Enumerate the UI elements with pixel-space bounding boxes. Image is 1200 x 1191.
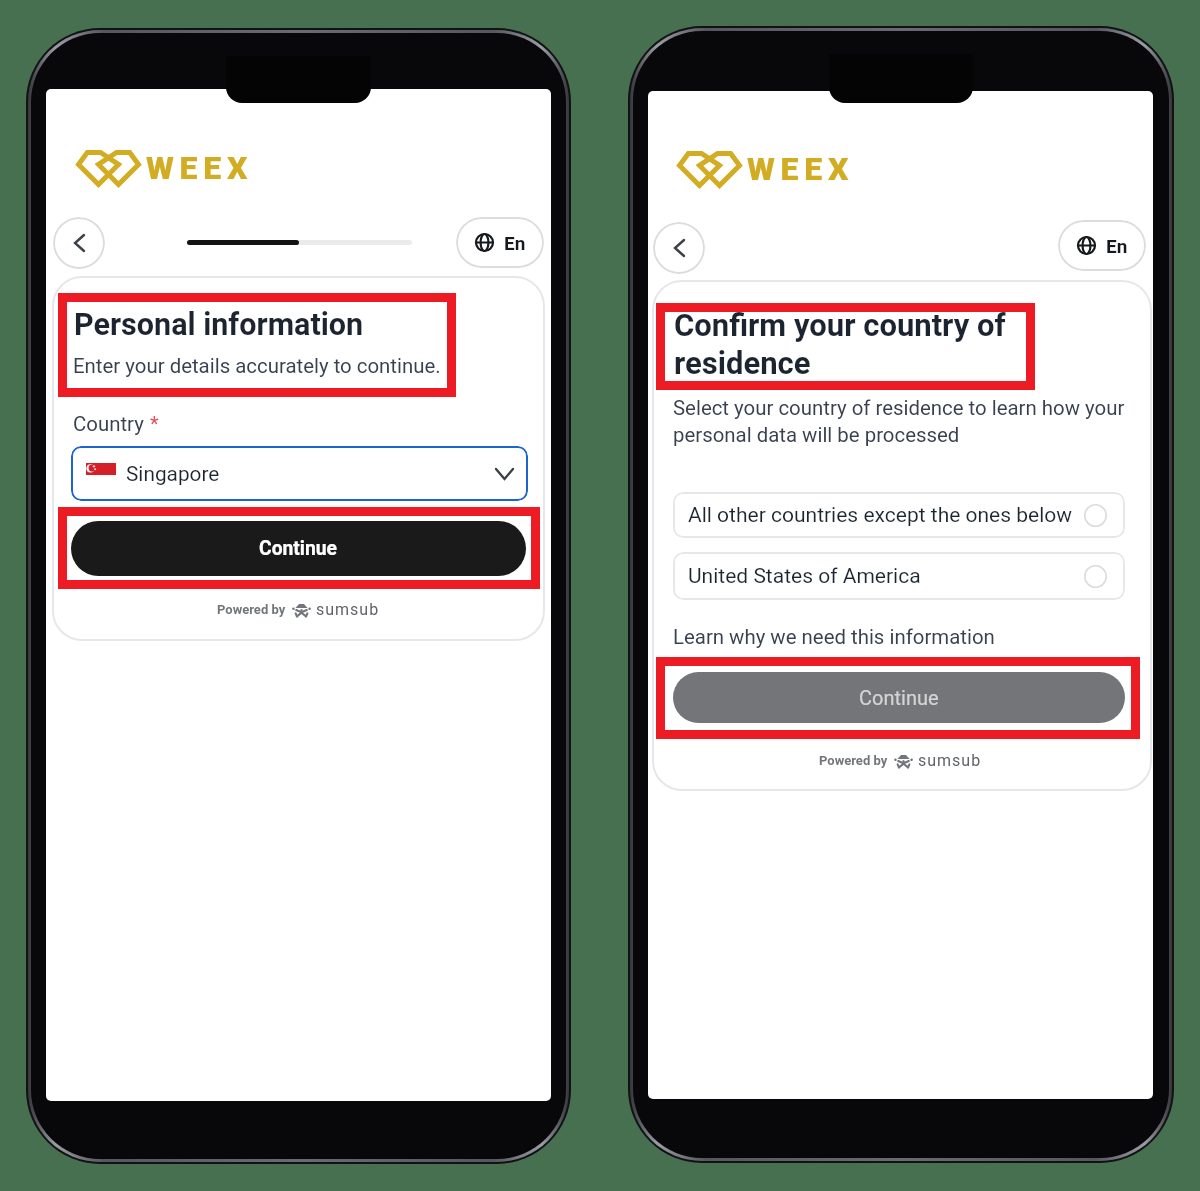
staticText: Powered by [819,753,888,768]
button[interactable]: En [1058,220,1146,271]
button[interactable]: Back [653,222,705,274]
staticText: All other countries except the ones belo… [688,503,1073,528]
staticText: WEEX [146,149,254,187]
button[interactable]: Continue [673,672,1125,723]
button[interactable]: Singapore [71,446,528,501]
staticText: Continue [259,537,338,560]
button[interactable]: United States of America [673,552,1125,600]
staticText: United States of America [688,564,921,589]
staticText: Continue [859,686,939,709]
staticText: sumsub [316,600,380,619]
staticText: En [504,232,526,254]
staticText: Personal information [74,307,364,343]
button[interactable]: Continue [71,521,526,576]
staticText: * [150,412,159,435]
staticText: En [1106,235,1128,257]
staticText: Singapore [126,462,220,486]
staticText: sumsub [918,751,982,770]
staticText: Country [73,412,144,436]
button[interactable]: Back [53,217,105,269]
button[interactable]: En [456,217,544,268]
staticText: Select your country of residence to lear… [673,396,1135,447]
button[interactable]: All other countries except the ones belo… [673,492,1125,538]
staticText: WEEX [747,150,855,188]
staticText: Powered by [217,602,286,617]
button[interactable]: Learn why we need this information [673,625,995,649]
staticText: Enter your details accurately to continu… [73,354,441,378]
staticText: Confirm your country of residence [674,307,1006,381]
